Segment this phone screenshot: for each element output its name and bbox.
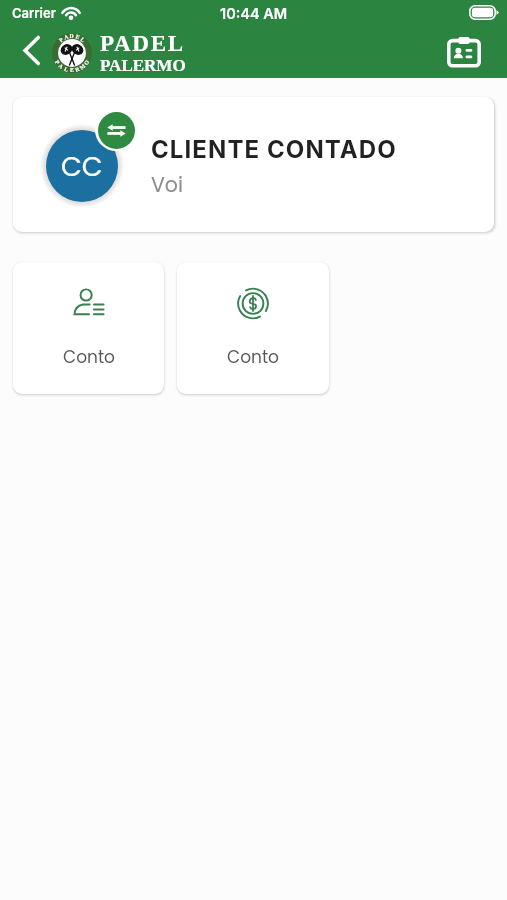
button[interactable]: Membership card [438, 28, 490, 78]
button[interactable]: Conto [177, 262, 329, 394]
staticText: CLIENTE CONTADO [151, 135, 397, 164]
button[interactable]: Conto [13, 262, 164, 394]
staticText: Conto [227, 345, 279, 369]
button[interactable]: Back [12, 25, 50, 75]
staticText: CC [61, 148, 103, 186]
staticText: PALERMO [100, 56, 186, 75]
staticText: PADEL [100, 31, 185, 56]
button[interactable]: Switch account [98, 112, 135, 149]
button[interactable]: CC [13, 97, 494, 232]
staticText: Voi [151, 170, 184, 199]
staticText: 10:44 AM [220, 5, 288, 23]
staticText: Conto [63, 345, 115, 369]
staticText: Carrier [12, 5, 56, 21]
